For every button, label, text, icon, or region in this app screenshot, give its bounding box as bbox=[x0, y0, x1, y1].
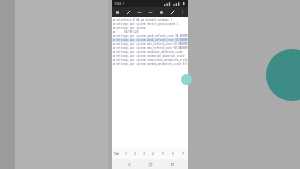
staticText: settings put system animation_duration_s… bbox=[116, 54, 188, 58]
button[interactable]: 2 bbox=[130, 148, 139, 159]
button[interactable]: settings put system animation_duration_s… bbox=[112, 54, 188, 58]
staticText: settings put system animator_duration_sc… bbox=[116, 50, 188, 54]
button[interactable]: settings put system theme_refresh_rate_a… bbox=[112, 26, 188, 30]
staticText: settings put system min_refresh_rate 60.… bbox=[116, 42, 188, 46]
button[interactable]: settings put system window_animation_sca… bbox=[112, 62, 188, 66]
button[interactable]: settings put system animator_duration_sc… bbox=[112, 50, 188, 54]
button[interactable]: Format bbox=[169, 9, 176, 16]
button[interactable]: 5 bbox=[158, 148, 168, 159]
button[interactable]: Floating cursor bbox=[181, 74, 192, 85]
button[interactable]: More options bbox=[179, 9, 186, 16]
button[interactable]: 60/90/120 bbox=[112, 30, 188, 34]
staticText: settings put system max_refresh_rate 90.… bbox=[116, 46, 188, 50]
button[interactable]: settings put system transition_animation… bbox=[112, 58, 188, 62]
staticText: Tab bbox=[114, 152, 120, 156]
button[interactable]: 6 bbox=[168, 148, 178, 159]
button[interactable]: settings put system peak_refresh_rate 60… bbox=[112, 38, 188, 42]
staticText: 3 bbox=[143, 151, 145, 156]
staticText: 4 bbox=[152, 151, 154, 156]
button[interactable]: Undo bbox=[136, 9, 143, 16]
staticText: 1:53 bbox=[114, 1, 121, 6]
staticText: 2 bbox=[134, 151, 136, 156]
staticText: 60/90/120 bbox=[118, 30, 139, 34]
button[interactable]: settings put system max_refresh_rate 90.… bbox=[112, 46, 188, 50]
button[interactable]: Back bbox=[124, 159, 134, 169]
staticText: settings put system theme_refresh_rate_a… bbox=[116, 26, 188, 30]
button[interactable]: settings put system peak_refresh_rate 90… bbox=[112, 34, 188, 38]
button[interactable]: Redo bbox=[147, 9, 154, 16]
button[interactable]: settings put system device_provisioned 1 bbox=[112, 22, 188, 26]
staticText: 1 bbox=[125, 151, 127, 156]
staticText: settings put system transition_animation… bbox=[116, 58, 188, 62]
button[interactable]: 3 bbox=[139, 148, 148, 159]
staticText: settings put system device_provisioned 1 bbox=[116, 22, 179, 26]
staticText: setenforce 0 && pm disable windows 1 bbox=[116, 18, 173, 22]
button[interactable]: settings put system min_refresh_rate 60.… bbox=[112, 42, 188, 46]
button[interactable]: Recents bbox=[167, 159, 177, 169]
staticText: 7 bbox=[182, 151, 184, 156]
staticText: 5 bbox=[162, 151, 164, 156]
button[interactable]: 1 bbox=[121, 148, 130, 159]
button[interactable]: Edit bbox=[125, 9, 132, 16]
staticText: settings put system peak_refresh_rate 90… bbox=[116, 34, 188, 38]
button[interactable]: Profile bubble bbox=[266, 49, 300, 101]
button[interactable]: 4 bbox=[148, 148, 158, 159]
button[interactable]: 7 bbox=[178, 148, 188, 159]
button[interactable]: Tab bbox=[112, 148, 121, 159]
staticText: 6 bbox=[172, 151, 174, 156]
staticText: settings put system peak_refresh_rate 60… bbox=[116, 38, 188, 42]
button[interactable]: setenforce 0 && pm disable windows 1 bbox=[112, 18, 188, 22]
button[interactable]: Menu bbox=[114, 9, 121, 16]
button[interactable]: Save bbox=[158, 9, 165, 16]
button[interactable]: Home bbox=[145, 159, 155, 169]
staticText: settings put system window_animation_sca… bbox=[116, 62, 188, 66]
